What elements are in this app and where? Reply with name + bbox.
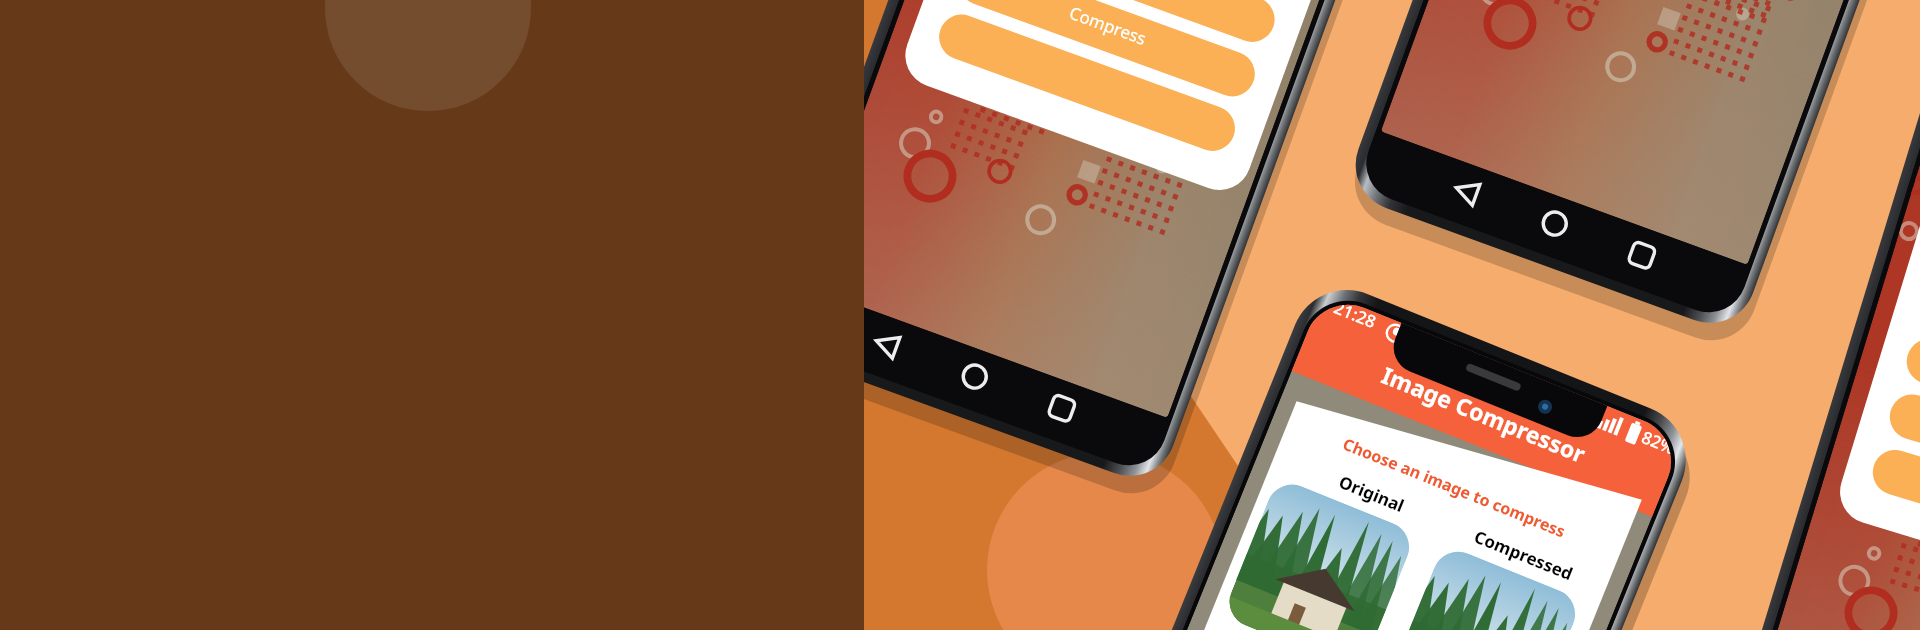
button[interactable]: Image Compressor promo banner (0, 0, 1920, 630)
